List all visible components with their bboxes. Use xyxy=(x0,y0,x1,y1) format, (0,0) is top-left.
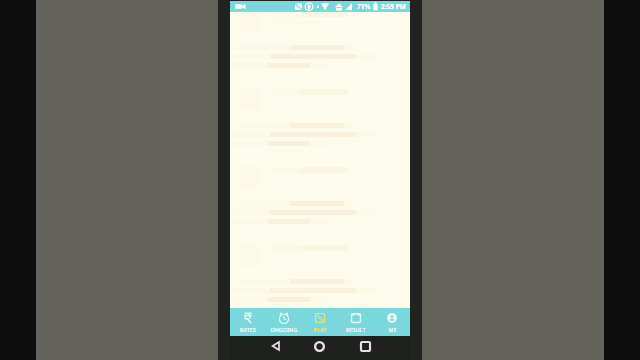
button[interactable]: PLAY xyxy=(302,308,338,336)
button[interactable]: RATES xyxy=(230,308,266,336)
button[interactable]: RESULT xyxy=(338,308,374,336)
staticText: ME xyxy=(388,326,397,333)
button[interactable]: ME xyxy=(374,308,410,336)
staticText: RATES xyxy=(240,326,256,333)
button[interactable]: Recents xyxy=(355,336,375,356)
staticText: ONGOING xyxy=(270,326,298,333)
staticText: 2:59 PM xyxy=(381,2,406,11)
button[interactable]: Home xyxy=(309,336,329,356)
staticText: RESULT xyxy=(346,326,366,333)
button[interactable]: Back xyxy=(266,336,286,356)
button[interactable]: ONGOING xyxy=(266,308,302,336)
staticText: 71% xyxy=(357,2,371,11)
staticText: PLAY xyxy=(314,326,327,333)
